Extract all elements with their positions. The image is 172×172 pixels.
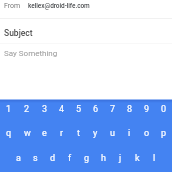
button[interactable]: d [44,146,61,171]
staticText: 3 [42,104,48,115]
button[interactable]: g [78,146,95,171]
button[interactable]: 1 [0,97,18,122]
button[interactable]: h [95,146,112,171]
button[interactable]: i [121,121,138,146]
staticText: a [16,153,21,164]
staticText: 7 [110,104,116,115]
button[interactable]: j [112,146,129,171]
staticText: j [119,153,122,164]
button[interactable]: Say Something [4,47,58,59]
staticText: 9 [144,104,150,115]
staticText: 0 [161,104,167,115]
button[interactable]: 2 [18,97,36,122]
staticText: kellex@droid-life.com [28,2,90,10]
staticText: r [60,128,64,139]
button[interactable]: u [104,121,121,146]
staticText: l [153,153,156,164]
button[interactable]: 6 [87,97,104,122]
button[interactable]: 7 [104,97,121,122]
button[interactable]: e [36,121,53,146]
button[interactable]: From [0,0,172,14]
button[interactable]: y [87,121,104,146]
staticText: w [24,128,31,139]
staticText: k [135,153,140,164]
button[interactable]: r [53,121,70,146]
staticText: From [4,2,21,10]
staticText: t [77,128,80,139]
staticText: 6 [93,104,99,115]
staticText: f [68,153,72,164]
staticText: y [93,128,98,139]
button[interactable]: s [27,146,44,171]
button[interactable]: 8 [121,97,138,122]
staticText: s [33,153,38,164]
staticText: 1 [6,104,12,115]
staticText: i [128,128,131,139]
button[interactable]: f [61,146,78,171]
button[interactable]: k [129,146,146,171]
button[interactable]: l [146,146,163,171]
staticText: p [161,128,167,139]
button[interactable]: t [70,121,87,146]
staticText: g [84,153,90,164]
button[interactable]: 5 [70,97,87,122]
button[interactable]: 9 [138,97,155,122]
staticText: d [50,153,56,164]
button[interactable]: 3 [36,97,53,122]
staticText: e [42,128,47,139]
button[interactable]: Subject [4,27,33,39]
button[interactable]: p [155,121,172,146]
staticText: 5 [76,104,82,115]
staticText: Subject [4,28,33,38]
button[interactable]: q [0,121,18,146]
button[interactable]: o [138,121,155,146]
staticText: h [101,153,106,164]
staticText: 4 [59,104,65,115]
staticText: 2 [24,104,30,115]
staticText: u [110,128,115,139]
button[interactable]: w [18,121,36,146]
staticText: o [144,128,150,139]
button[interactable]: 4 [53,97,70,122]
staticText: 8 [127,104,133,115]
staticText: Say Something [4,49,58,58]
button[interactable]: 0 [155,97,172,122]
button[interactable]: a [9,146,27,171]
staticText: q [6,128,12,139]
